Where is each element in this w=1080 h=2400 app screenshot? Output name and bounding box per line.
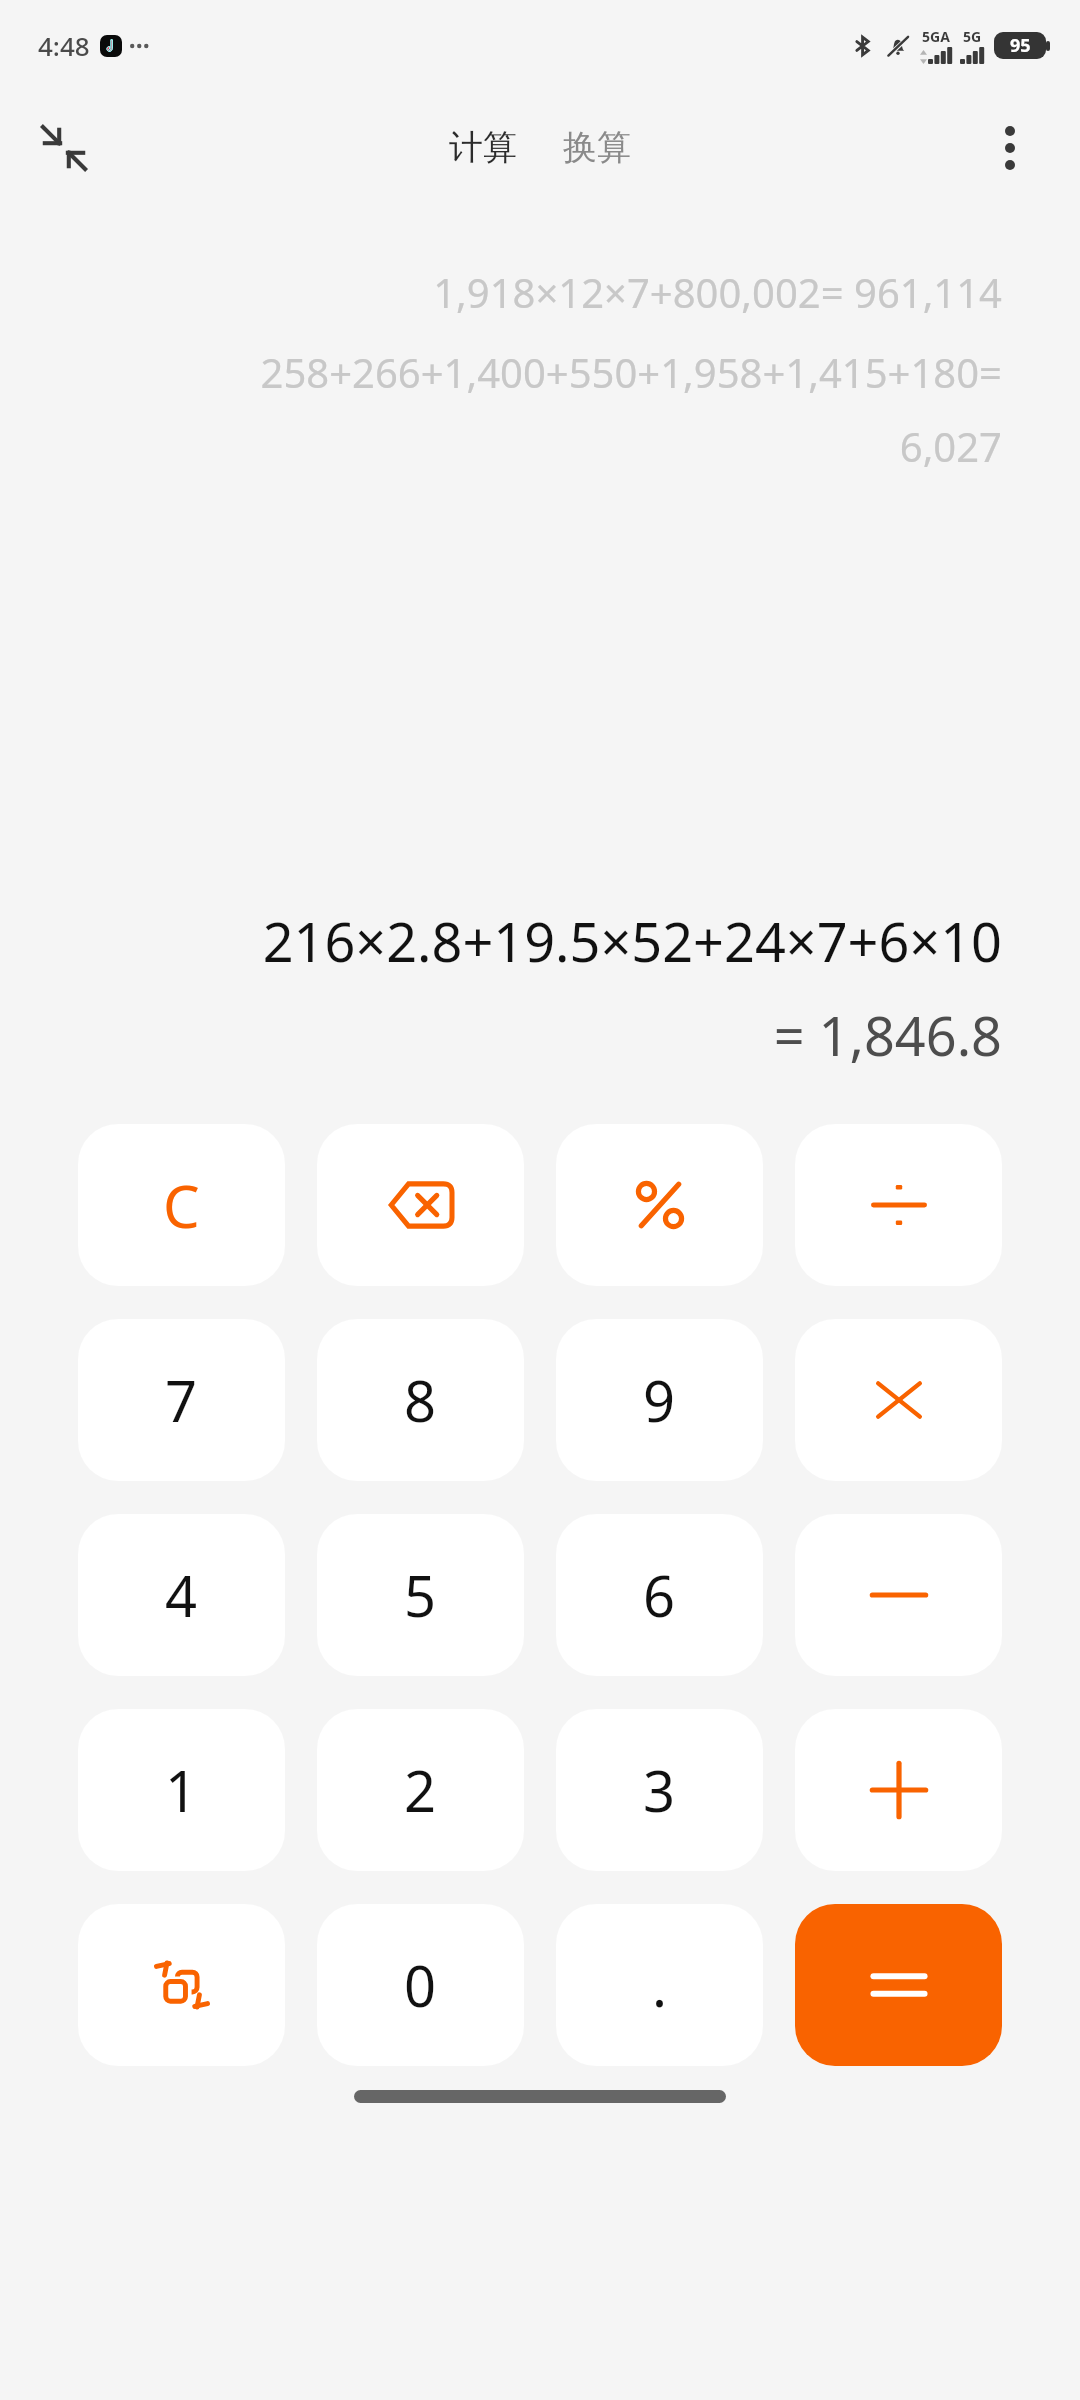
other: Percent xyxy=(556,1124,763,1286)
button[interactable]: 6 xyxy=(556,1514,763,1676)
staticText: = 1,846.8 xyxy=(773,998,1002,1072)
button[interactable]: Multiply xyxy=(795,1319,1002,1481)
staticText: 1 xyxy=(165,1752,198,1828)
staticText: 9 xyxy=(643,1362,676,1438)
staticText: 5G xyxy=(963,27,982,46)
button[interactable]: 2 xyxy=(317,1709,524,1871)
staticText: 0 xyxy=(404,1947,437,2023)
button[interactable]: 5 xyxy=(317,1514,524,1676)
staticText: C xyxy=(163,1166,200,1245)
staticText: 216×2.8+19.5×52+24×7+6×10 xyxy=(262,904,1002,978)
staticText: 6 xyxy=(643,1557,676,1633)
button[interactable]: 9 xyxy=(556,1319,763,1481)
button[interactable]: 3 xyxy=(556,1709,763,1871)
staticText: 3 xyxy=(643,1752,676,1828)
staticText: 8 xyxy=(404,1362,437,1438)
other: Divide xyxy=(795,1124,1002,1286)
staticText: 2 xyxy=(404,1752,437,1828)
other: Minus xyxy=(795,1514,1002,1676)
button[interactable]: Plus xyxy=(795,1709,1002,1871)
staticText: 5 xyxy=(404,1557,437,1633)
button[interactable]: . xyxy=(556,1904,763,2066)
staticText: 5GA xyxy=(922,27,950,46)
button[interactable]: 计算 xyxy=(435,116,531,179)
button[interactable]: Backspace xyxy=(317,1124,524,1286)
other: Plus xyxy=(795,1709,1002,1871)
button[interactable]: Clear xyxy=(78,1124,285,1286)
button[interactable]: 0 xyxy=(317,1904,524,2066)
staticText: 7 xyxy=(165,1362,198,1438)
button[interactable]: Percent xyxy=(556,1124,763,1286)
staticText: . xyxy=(652,1947,668,2023)
other: Unit conversion xyxy=(78,1904,285,2066)
button[interactable]: 1 xyxy=(78,1709,285,1871)
button[interactable]: Collapse xyxy=(22,106,106,190)
button[interactable]: Equals xyxy=(795,1904,1002,2066)
staticText: 4 xyxy=(165,1557,198,1633)
button[interactable]: 4 xyxy=(78,1514,285,1676)
button[interactable]: 7 xyxy=(78,1319,285,1481)
staticText: 计算 xyxy=(449,126,517,169)
button[interactable]: 8 xyxy=(317,1319,524,1481)
button[interactable]: 换算 xyxy=(549,116,645,179)
other: Multiply xyxy=(795,1319,1002,1481)
staticText: 4:48 xyxy=(38,28,90,63)
button[interactable]: More options xyxy=(970,108,1050,188)
button[interactable]: Unit conversion xyxy=(78,1904,285,2066)
other: Backspace xyxy=(317,1124,524,1286)
staticText: 换算 xyxy=(563,126,631,169)
button[interactable]: Divide xyxy=(795,1124,1002,1286)
other: Clear xyxy=(78,1124,285,1286)
button[interactable]: Minus xyxy=(795,1514,1002,1676)
staticText: 1,918×12×7+800,002= 961,114 xyxy=(433,265,1002,319)
staticText: 258+266+1,400+550+1,958+1,415+180= 6,027 xyxy=(260,345,1002,474)
staticText: 95 xyxy=(1010,33,1031,58)
